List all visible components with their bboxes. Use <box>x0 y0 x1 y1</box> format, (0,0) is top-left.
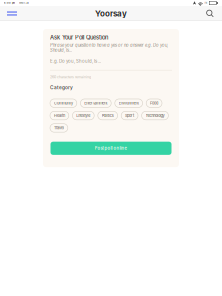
staticText: Technology <box>145 113 164 118</box>
button[interactable]: Lifestyle <box>72 111 94 120</box>
button[interactable]: Sport <box>121 111 138 120</box>
staticText: Wed 5 Jul <box>19 2 29 4</box>
button[interactable]: Health <box>50 111 69 120</box>
staticText: Travel <box>54 126 64 130</box>
button[interactable]: Post poll online <box>50 142 171 155</box>
staticText: Politics <box>102 113 114 118</box>
staticText: Lifestyle <box>76 113 90 118</box>
staticText: Health <box>54 113 65 118</box>
staticText: Category <box>50 85 73 90</box>
button[interactable]: Travel <box>50 124 68 132</box>
button[interactable]: Politics <box>98 111 118 120</box>
staticText: Ask Your Poll Question <box>50 34 108 41</box>
staticText: 6:00 pm <box>4 1 15 4</box>
button[interactable]: Menu <box>3 8 21 19</box>
staticText: Environment <box>119 101 139 106</box>
staticText: IN <box>204 2 207 4</box>
button[interactable]: Technology <box>142 111 168 120</box>
staticText: 260 characters remaining <box>50 75 91 79</box>
staticText: Post poll online <box>94 146 127 151</box>
staticText: Yoorsay <box>95 9 127 18</box>
button[interactable]: Search <box>203 7 217 19</box>
staticText: Entertainment <box>84 101 107 106</box>
staticText: Community <box>54 101 73 106</box>
button[interactable]: Environment <box>115 99 143 107</box>
button[interactable]: Community <box>50 99 77 107</box>
staticText: Food <box>150 101 158 106</box>
staticText: E.g. Do you, Should, Is ... <box>50 58 101 64</box>
staticText: Phrase your question to have a yes or no… <box>50 43 168 53</box>
button[interactable]: Food <box>146 99 162 107</box>
button[interactable]: Entertainment <box>80 99 111 107</box>
staticText: Sport <box>125 113 134 118</box>
